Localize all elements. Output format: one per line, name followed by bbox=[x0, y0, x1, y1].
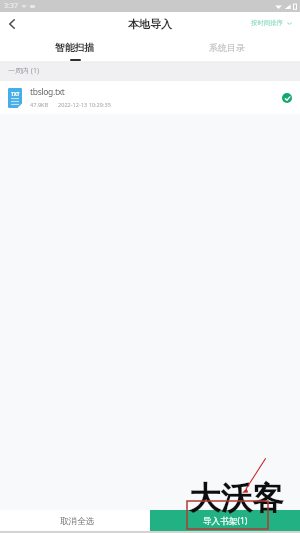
staticText: 2022-12-13 10:29:35 bbox=[58, 101, 111, 109]
staticText: 导入书架(1) bbox=[203, 515, 248, 527]
staticText: 取消全选 bbox=[60, 516, 95, 527]
button[interactable]: Selected bbox=[282, 93, 292, 103]
button[interactable]: 智能扫描 bbox=[0, 34, 150, 61]
staticText: 47.9KB bbox=[30, 101, 49, 109]
staticText: 智能扫描 bbox=[55, 42, 95, 54]
button[interactable]: Back bbox=[0, 12, 23, 34]
button[interactable]: 取消全选 bbox=[0, 510, 150, 531]
button[interactable]: TXT bbox=[0, 81, 300, 114]
button[interactable]: 系统目录 bbox=[154, 34, 300, 61]
button[interactable]: 按时间排序 bbox=[251, 19, 292, 27]
staticText: 本地导入 bbox=[128, 17, 172, 31]
staticText: 一周内 (1) bbox=[8, 66, 40, 76]
staticText: 按时间排序 bbox=[251, 19, 283, 27]
staticText: TXT bbox=[11, 91, 20, 97]
staticText: 系统目录 bbox=[209, 42, 245, 53]
button[interactable]: 导入书架(1) bbox=[150, 510, 300, 531]
staticText: 3:37 bbox=[4, 1, 18, 11]
staticText: tbslog.txt bbox=[30, 86, 65, 98]
staticText: 大沃客 bbox=[189, 479, 284, 519]
